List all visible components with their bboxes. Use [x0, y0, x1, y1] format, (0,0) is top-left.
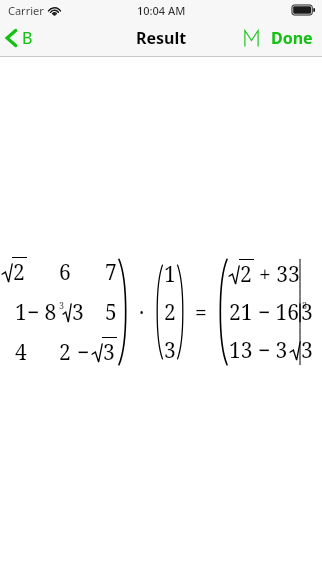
button[interactable]: Done: [265, 22, 322, 54]
staticText: 5: [105, 298, 117, 327]
staticText: Carrier: [8, 3, 44, 18]
staticText: Result: [136, 27, 187, 49]
staticText: 2: [13, 258, 25, 287]
staticText: 3: [59, 299, 65, 311]
staticText: − 8: [27, 298, 57, 327]
staticText: B: [22, 27, 33, 49]
staticText: 2: [164, 298, 176, 327]
staticText: 21 − 16: [229, 298, 300, 327]
staticText: 6: [59, 258, 71, 287]
button[interactable]: B: [0, 23, 43, 53]
staticText: ·: [139, 298, 145, 327]
staticText: 7: [105, 258, 117, 287]
staticText: =: [195, 298, 207, 327]
staticText: 10:04 AM: [137, 3, 186, 18]
staticText: −: [77, 338, 90, 367]
button[interactable]: Matrix tool: [238, 26, 265, 51]
staticText: 2: [59, 338, 71, 367]
staticText: Done: [271, 27, 313, 49]
staticText: 2: [240, 260, 252, 289]
staticText: 3: [103, 338, 115, 367]
staticText: 1: [164, 260, 176, 289]
staticText: 1: [15, 298, 27, 327]
staticText: 3: [164, 336, 176, 365]
staticText: 4: [15, 338, 27, 367]
staticText: + 33: [259, 260, 300, 289]
staticText: 13 − 3: [229, 336, 288, 365]
